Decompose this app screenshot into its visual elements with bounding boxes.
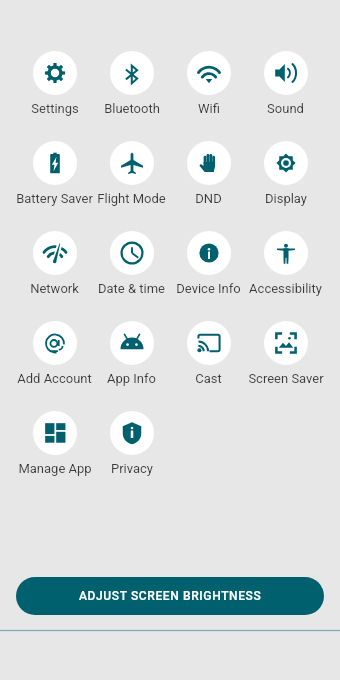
staticText: Privacy [111,461,153,476]
other: DND [187,141,231,185]
other: Accessibility [264,231,308,275]
button[interactable]: ADJUST SCREEN BRIGHTNESS [16,577,324,615]
button[interactable]: Sound [247,51,324,116]
other: Network [33,231,77,275]
button[interactable]: Manage App [16,411,93,476]
staticText: Flight Mode [97,191,166,206]
button[interactable]: DND [170,141,247,206]
button[interactable]: App Info [93,321,170,386]
other: Settings [33,51,77,95]
staticText: Accessibility [249,281,322,296]
button[interactable]: Date & time [93,231,170,296]
button[interactable]: Accessibility [247,231,324,296]
button[interactable]: Add Account [16,321,93,386]
staticText: Screen Saver [248,371,324,386]
staticText: Manage App [18,461,92,476]
other: Cast [187,321,231,365]
button[interactable]: Settings [16,51,93,116]
staticText: Add Account [17,371,92,386]
button[interactable]: Bluetooth [93,51,170,116]
other: Bluetooth [110,51,154,95]
staticText: Bluetooth [104,101,160,116]
button[interactable]: Screen Saver [247,321,324,386]
staticText: Device Info [176,281,241,296]
other: Privacy [110,411,154,455]
staticText: App Info [107,371,156,386]
staticText: Wifi [198,101,220,116]
staticText: Date & time [98,281,165,296]
staticText: Settings [31,101,79,116]
button[interactable]: Device Info [170,231,247,296]
staticText: Network [30,281,79,296]
other: Sound [264,51,308,95]
other: Battery Saver [33,141,77,185]
staticText: Cast [195,371,222,386]
other: Device Info [187,231,231,275]
staticText: Sound [267,101,304,116]
button[interactable]: Cast [170,321,247,386]
other: Date & time [110,231,154,275]
other: Manage App [33,411,77,455]
staticText: ADJUST SCREEN BRIGHTNESS [79,589,262,603]
button[interactable]: Network [16,231,93,296]
other: Add Account [33,321,77,365]
staticText: DND [195,191,222,206]
staticText: Battery Saver [16,191,93,206]
button[interactable]: Privacy [93,411,170,476]
other: Display [264,141,308,185]
staticText: Display [265,191,307,206]
button[interactable]: Battery Saver [16,141,93,206]
button[interactable]: Display [247,141,324,206]
other: Screen Saver [264,321,308,365]
button[interactable]: Wifi [170,51,247,116]
button[interactable]: Flight Mode [93,141,170,206]
other: Wifi [187,51,231,95]
other: App Info [110,321,154,365]
other: Flight Mode [110,141,154,185]
